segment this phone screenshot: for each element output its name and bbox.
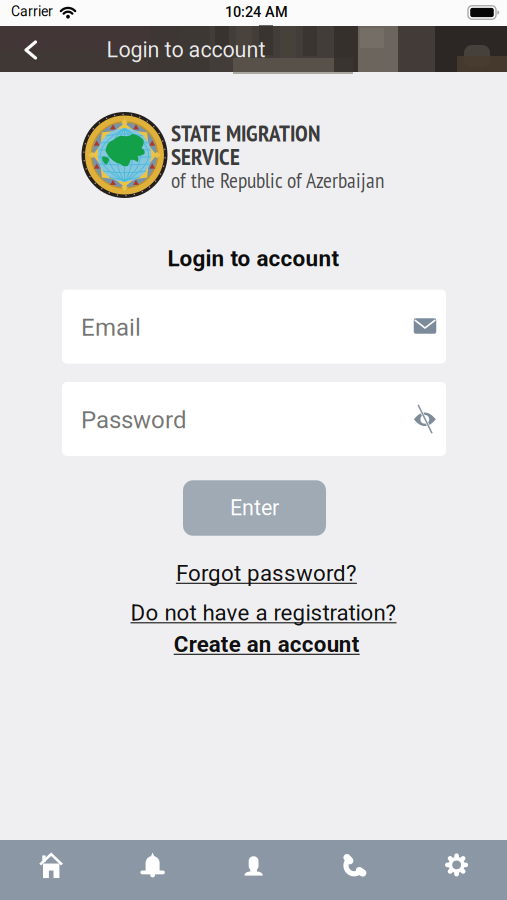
button[interactable]: Password <box>62 382 446 456</box>
button[interactable]: Home <box>0 840 101 900</box>
button[interactable]: Settings <box>406 840 507 900</box>
button[interactable]: Back <box>20 37 46 63</box>
staticText: Email <box>81 313 141 341</box>
staticText: Login to account <box>106 37 265 63</box>
staticText: Carrier <box>11 3 53 20</box>
button[interactable]: Email <box>62 289 446 363</box>
button[interactable]: Forgot password? <box>176 560 357 586</box>
staticText: 10:24 AM <box>225 3 288 20</box>
staticText: Login to account <box>167 245 339 272</box>
staticText: Do not have a registration? <box>130 600 396 626</box>
button[interactable]: Profile <box>203 840 304 900</box>
button[interactable]: Do not have a registration? <box>130 600 396 626</box>
staticText: Create an account <box>174 631 360 657</box>
staticText: SERVICE <box>171 142 240 171</box>
button[interactable]: Enter <box>183 480 326 536</box>
staticText: STATE MIGRATION <box>171 118 320 148</box>
staticText: Enter <box>230 495 279 521</box>
button[interactable]: Contact <box>304 840 405 900</box>
staticText: Password <box>81 406 187 434</box>
button[interactable]: Create an account <box>174 631 360 657</box>
button[interactable]: Notifications <box>102 840 203 900</box>
staticText: of the Republic of Azerbaijan <box>171 166 384 194</box>
button[interactable]: Show password <box>408 399 442 439</box>
staticText: Forgot password? <box>176 560 357 586</box>
